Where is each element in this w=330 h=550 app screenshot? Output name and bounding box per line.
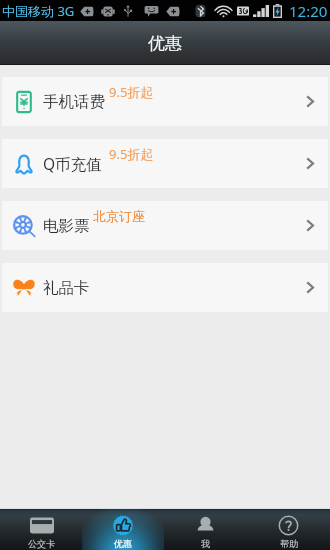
- button[interactable]: 手机话费: [2, 77, 328, 126]
- button[interactable]: 优惠: [82, 509, 164, 550]
- staticText: 北京订座: [93, 208, 145, 224]
- staticText: 9.5折起: [109, 83, 154, 101]
- button[interactable]: Q币充值: [2, 139, 328, 188]
- staticText: 公交卡: [28, 538, 55, 549]
- button[interactable]: 我: [164, 509, 247, 550]
- staticText: 我: [201, 538, 210, 549]
- staticText: 电影票: [43, 216, 90, 236]
- staticText: 礼品卡: [43, 278, 90, 298]
- staticText: 9.5折起: [109, 145, 154, 163]
- staticText: 帮助: [280, 538, 298, 549]
- staticText: 12:20: [289, 1, 328, 21]
- staticText: 优惠: [148, 33, 182, 54]
- staticText: 优惠: [114, 538, 132, 549]
- staticText: Q币充值: [43, 153, 102, 174]
- button[interactable]: 帮助: [247, 509, 330, 550]
- staticText: 中国移动 3G: [2, 2, 75, 20]
- button[interactable]: 电影票: [2, 201, 328, 250]
- staticText: 手机话费: [43, 92, 105, 112]
- button[interactable]: 公交卡: [0, 509, 82, 550]
- button[interactable]: 礼品卡: [2, 263, 328, 312]
